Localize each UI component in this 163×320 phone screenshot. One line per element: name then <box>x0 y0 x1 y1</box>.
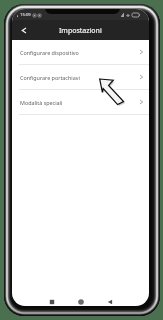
button[interactable]: Configurare dispositivo <box>12 40 149 65</box>
staticText: Configurare portachiavi <box>20 74 80 81</box>
staticText: Modalità speciali <box>20 99 63 106</box>
button[interactable]: Recents <box>46 296 58 306</box>
staticText: Impostazioni <box>59 26 102 36</box>
button[interactable]: Home <box>75 296 87 306</box>
staticText: Configurare dispositivo <box>20 49 79 56</box>
staticText: 15:09 <box>20 12 31 18</box>
button[interactable]: Back <box>104 296 116 306</box>
button[interactable]: Configurare portachiavi <box>12 65 149 90</box>
button[interactable]: Modalità speciali <box>12 90 149 115</box>
button[interactable]: Back <box>17 24 30 37</box>
